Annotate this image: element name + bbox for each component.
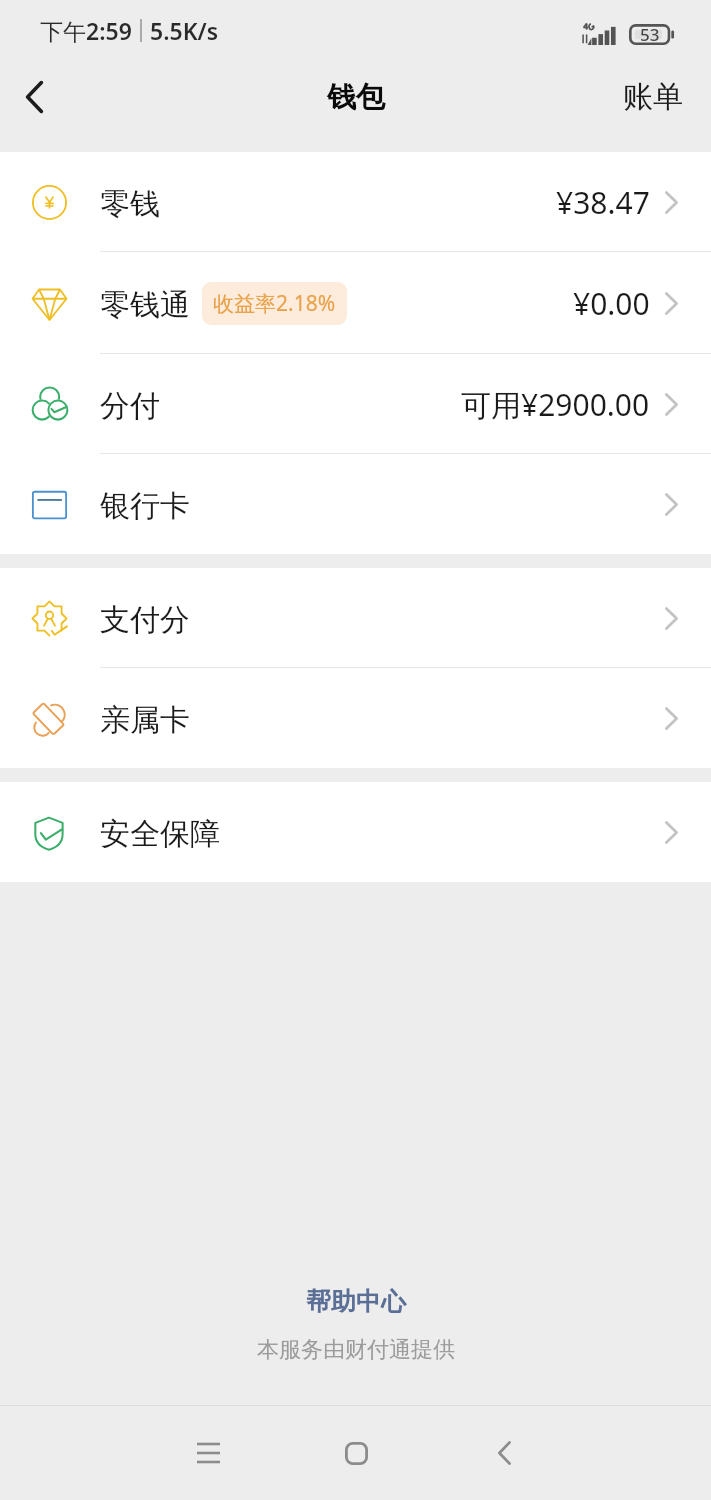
staticText: 收益率2.18% [213, 289, 336, 318]
staticText: ¥38.47 [556, 182, 650, 223]
button[interactable]: 账单 [623, 60, 711, 152]
button[interactable]: 银行卡 [0, 454, 711, 554]
button[interactable]: 零钱 [0, 152, 711, 252]
staticText: 零钱通 [100, 286, 190, 324]
staticText: 银行卡 [100, 487, 190, 525]
button[interactable]: Recents [173, 1418, 243, 1488]
staticText: 分付 [100, 387, 160, 425]
staticText: 亲属卡 [100, 701, 190, 739]
staticText: 53 [640, 23, 660, 46]
button[interactable]: Back [469, 1418, 539, 1488]
staticText: 支付分 [100, 601, 190, 639]
button[interactable]: 分付 [0, 354, 711, 454]
button[interactable]: 安全保障 [0, 782, 711, 882]
button[interactable]: Back [0, 60, 70, 152]
staticText: 账单 [623, 78, 683, 116]
staticText: 本服务由财付通提供 [257, 1336, 455, 1364]
staticText: 钱包 [327, 79, 385, 116]
staticText: 5.5K/s [150, 15, 219, 46]
staticText: 帮助中心 [306, 1286, 406, 1317]
staticText: 零钱 [100, 185, 160, 223]
button[interactable]: Home [321, 1418, 391, 1488]
staticText: 可用¥2900.00 [461, 384, 650, 425]
staticText: 下午2:59 [40, 15, 132, 46]
button[interactable]: 帮助中心 [306, 1286, 406, 1317]
staticText: 安全保障 [100, 815, 220, 853]
button[interactable]: 零钱通 [0, 252, 711, 354]
staticText: ¥0.00 [573, 283, 650, 324]
button[interactable]: 支付分 [0, 568, 711, 668]
button[interactable]: 亲属卡 [0, 668, 711, 768]
